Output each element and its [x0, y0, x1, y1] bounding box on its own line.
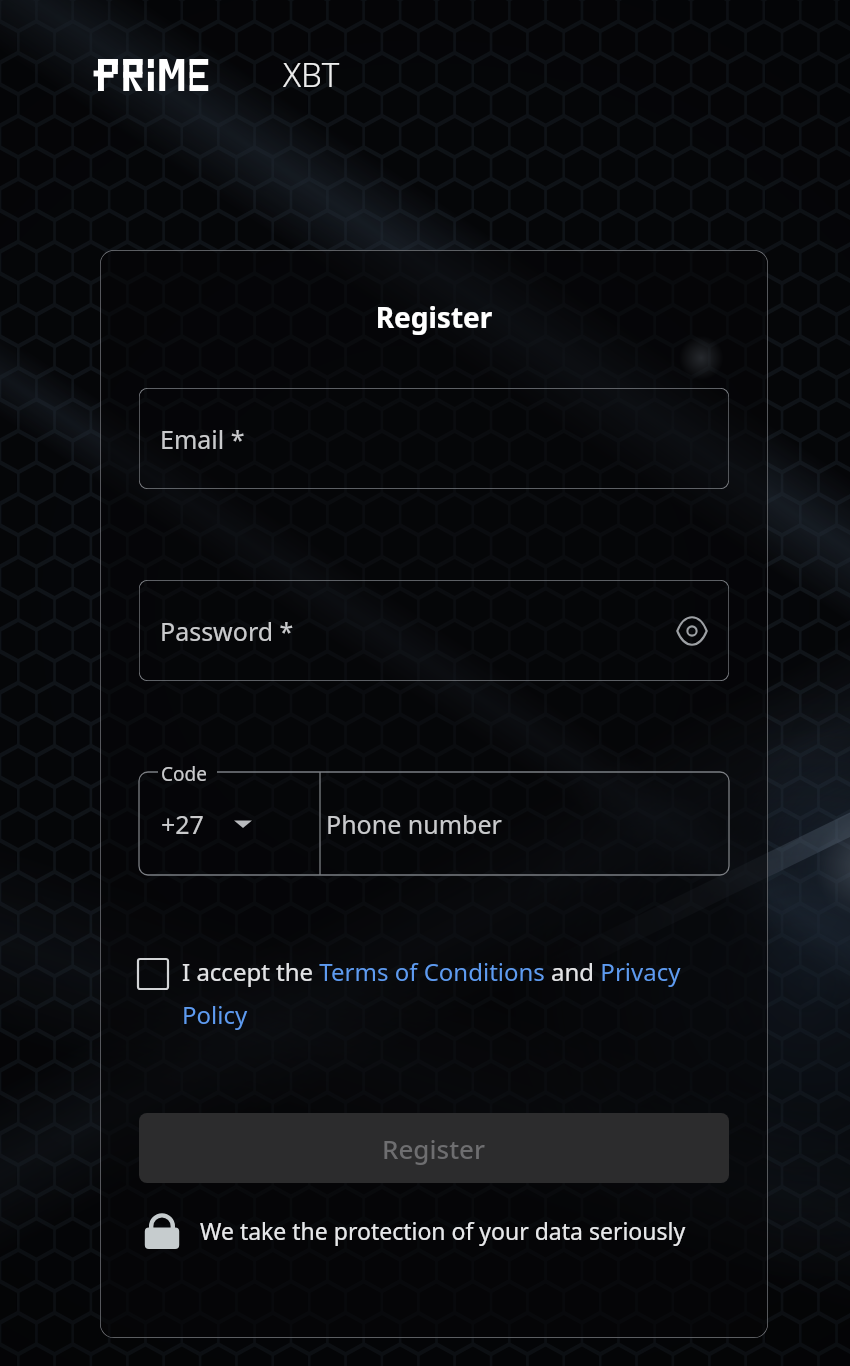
button[interactable]: I accept the Terms of Conditions and Pri…: [138, 955, 730, 1031]
staticText: Register: [382, 1131, 486, 1166]
button[interactable]: +27: [139, 772, 320, 875]
staticText: Register: [100, 298, 768, 336]
other: Select country code: [234, 815, 252, 833]
staticText: I accept the Terms of Conditions and Pri…: [182, 955, 730, 1031]
staticText: We take the protection of your data seri…: [200, 1215, 686, 1246]
staticText: Phone number: [326, 807, 502, 841]
button[interactable]: Register: [139, 1113, 729, 1183]
staticText: Code: [161, 761, 207, 787]
button[interactable]: Phone number: [304, 772, 729, 875]
staticText: +27: [161, 807, 204, 841]
staticText: Password *: [160, 614, 294, 648]
button[interactable]: Show password: [675, 614, 709, 648]
staticText: XBT: [283, 52, 340, 97]
staticText: Email *: [160, 422, 245, 456]
button[interactable]: Password *: [139, 580, 729, 681]
button[interactable]: Email *: [139, 388, 729, 489]
